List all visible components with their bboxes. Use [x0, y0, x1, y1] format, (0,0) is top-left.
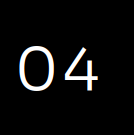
- staticText: 04: [15, 33, 99, 107]
